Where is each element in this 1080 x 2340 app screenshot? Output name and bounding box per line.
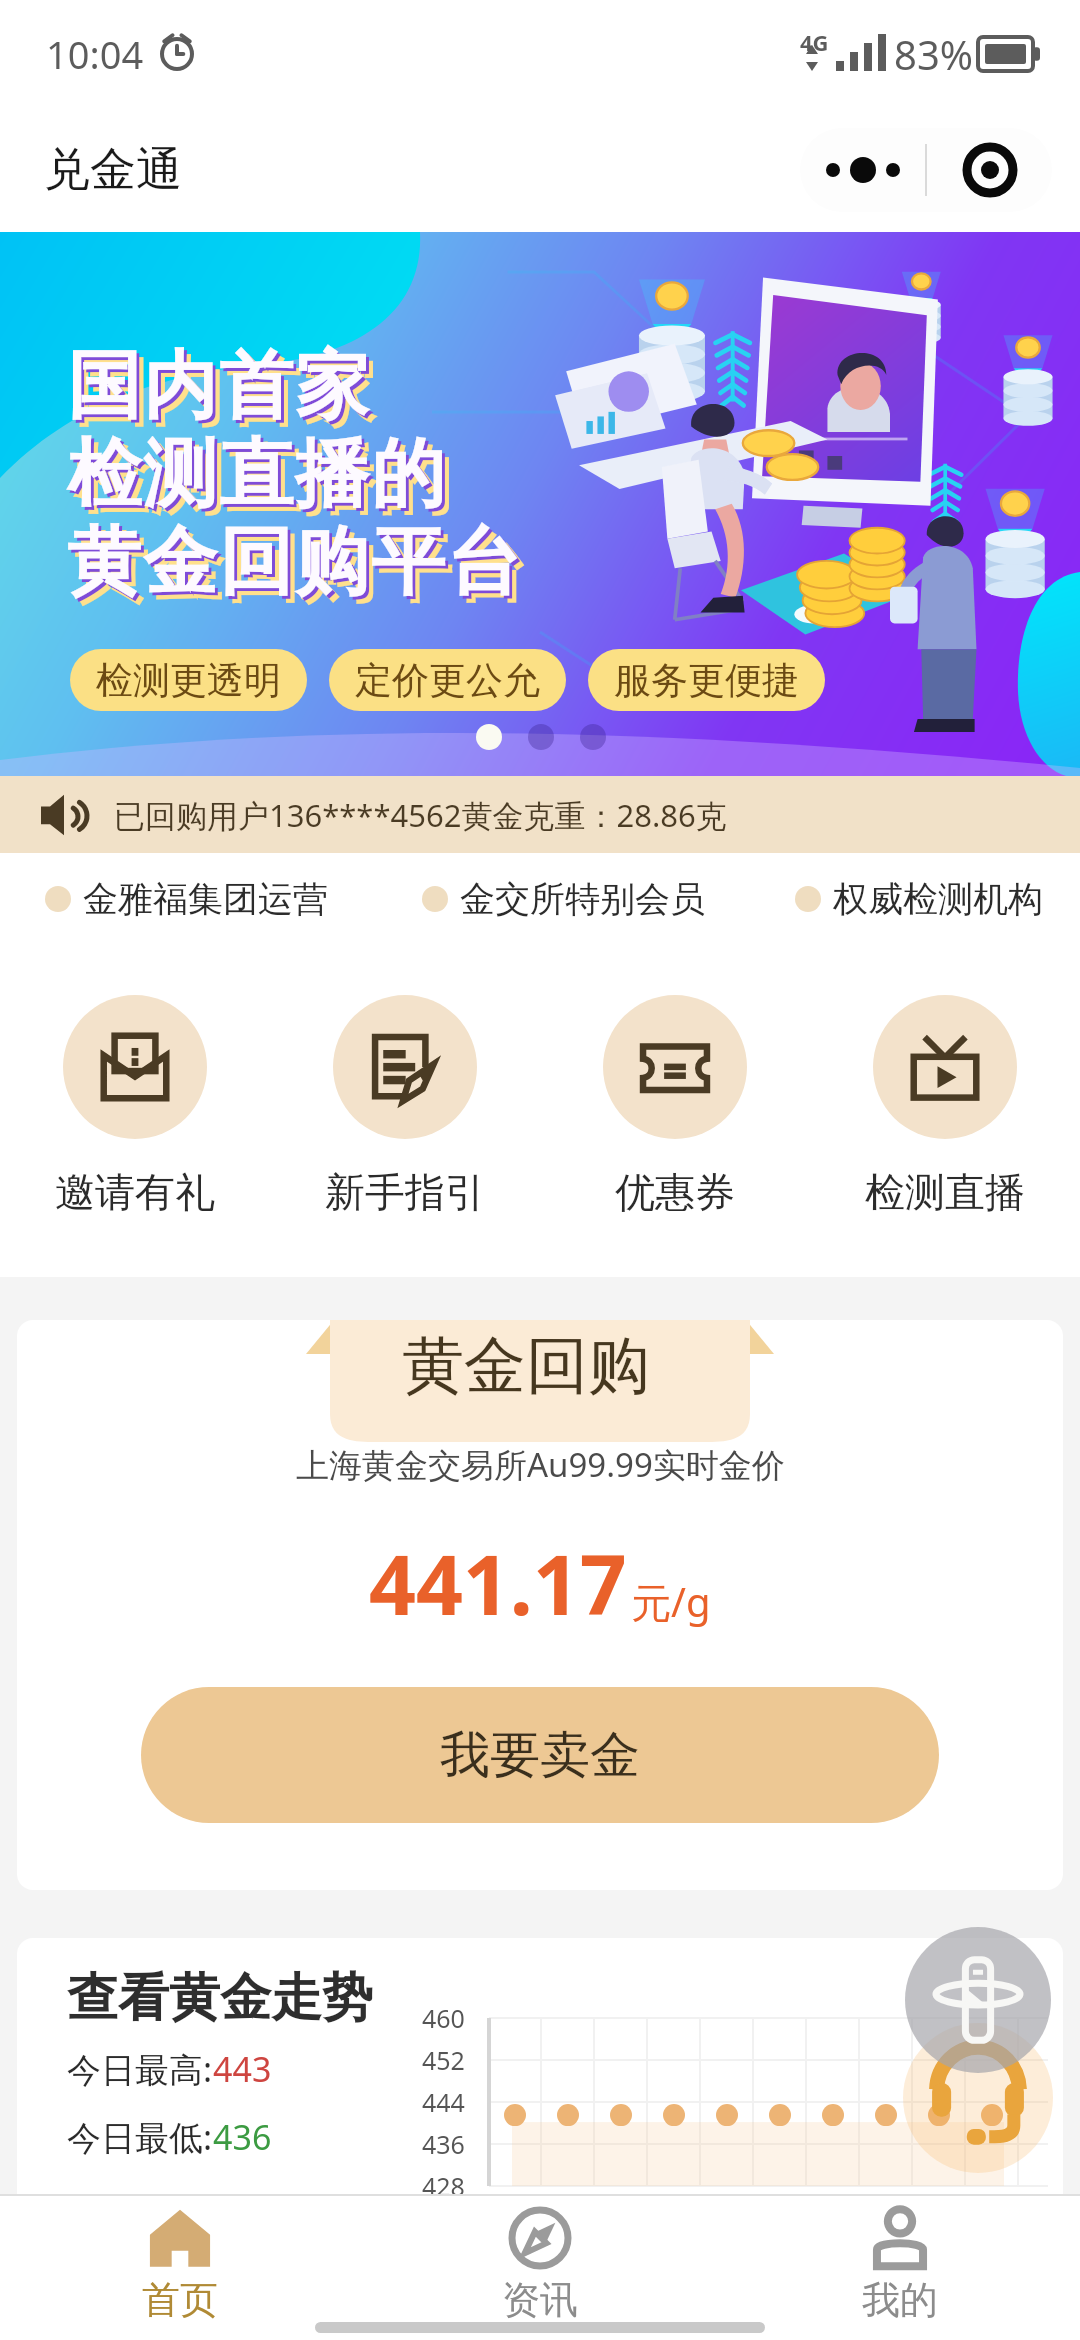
button[interactable]: 资讯: [360, 2196, 720, 2340]
staticText: 资讯: [502, 2276, 578, 2324]
staticText: 国内首家: [66, 340, 370, 433]
staticText: 检测直播的: [66, 428, 446, 521]
button[interactable]: 新手指引: [270, 945, 540, 1277]
staticText: 检测直播的: [69, 431, 449, 524]
staticText: 4G: [800, 27, 829, 57]
staticText: 检测直播的: [73, 435, 453, 528]
staticText: 黄金回购平台: [73, 523, 529, 616]
staticText: 检测直播: [865, 1167, 1025, 1217]
staticText: 黄金回购平台: [66, 516, 522, 609]
button[interactable]: Customer service: [903, 2023, 1053, 2173]
staticText: 441.17: [369, 1527, 627, 1639]
staticText: 国内首家: [73, 347, 377, 440]
staticText: 我的: [862, 2276, 938, 2324]
button[interactable]: Menu and close: [800, 128, 1052, 212]
button[interactable]: 定价更公允: [329, 649, 566, 711]
button[interactable]: 已回购用户136****4562黄金克重：28.86克: [0, 776, 1080, 853]
staticText: 已回购用户136****4562黄金克重：28.86克: [114, 794, 727, 836]
staticText: 服务更便捷: [614, 657, 799, 704]
button[interactable]: 优惠券: [540, 945, 810, 1277]
staticText: 权威检测机构: [833, 877, 1043, 921]
button[interactable]: 查看黄金走势: [17, 1938, 1063, 2240]
staticText: 443: [213, 2046, 272, 2092]
button[interactable]: 我要卖金: [141, 1687, 939, 1823]
staticText: 邀请有礼: [55, 1167, 215, 1217]
staticText: 优惠券: [615, 1167, 735, 1217]
staticText: 新手指引: [325, 1167, 485, 1217]
staticText: 国内首家: [69, 343, 373, 436]
staticText: 查看黄金走势: [67, 1966, 373, 2030]
staticText: 今日最低:: [67, 2114, 213, 2160]
button[interactable]: 检测直播: [810, 945, 1080, 1277]
staticText: 黄金回购平台: [69, 519, 525, 612]
staticText: 上海黄金交易所Au99.99实时金价: [296, 1442, 785, 1487]
staticText: 83%: [894, 27, 973, 81]
staticText: 436: [213, 2114, 272, 2160]
staticText: 今日最高:: [67, 2046, 213, 2092]
staticText: 元/g: [631, 1574, 711, 1629]
staticText: 460: [422, 2001, 465, 2035]
staticText: 452: [422, 2043, 465, 2077]
staticText: 金交所特别会员: [460, 877, 705, 921]
staticText: 金雅福集团运营: [83, 877, 328, 921]
staticText: 444: [422, 2085, 465, 2119]
staticText: 首页: [142, 2276, 218, 2324]
staticText: 428: [422, 2169, 465, 2203]
button[interactable]: 检测更透明: [70, 649, 307, 711]
button[interactable]: Rotate screen: [905, 1927, 1051, 2073]
staticText: 我要卖金: [440, 1724, 640, 1787]
staticText: 10:04: [46, 28, 144, 80]
button[interactable]: 首页: [0, 2196, 360, 2340]
button[interactable]: 邀请有礼: [0, 945, 270, 1277]
button[interactable]: 服务更便捷: [588, 649, 825, 711]
staticText: 检测更透明: [96, 657, 281, 704]
staticText: 兑金通: [44, 141, 182, 199]
staticText: 定价更公允: [355, 657, 540, 704]
staticText: 黄金回购: [402, 1327, 650, 1405]
button[interactable]: 我的: [720, 2196, 1080, 2340]
staticText: 436: [422, 2127, 465, 2161]
